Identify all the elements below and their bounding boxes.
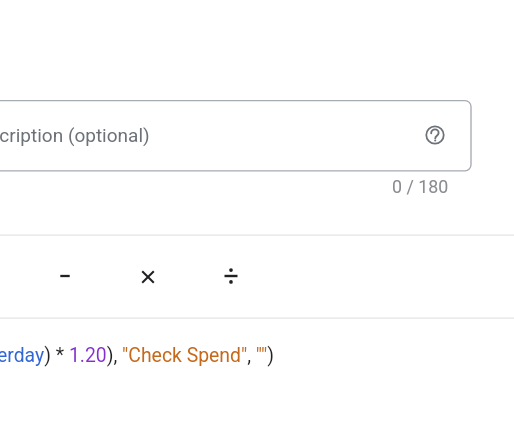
- staticText: erday) * 1.20), "Check Spend", ""): [0, 344, 274, 367]
- button[interactable]: Divide: [205, 250, 257, 302]
- button[interactable]: Minus: [39, 250, 91, 302]
- button[interactable]: Help: [421, 121, 449, 149]
- staticText: 0 / 180: [392, 176, 449, 197]
- button[interactable]: [0, 96, 474, 176]
- button[interactable]: Multiply: [122, 251, 174, 303]
- staticText: Description (optional): [0, 124, 150, 146]
